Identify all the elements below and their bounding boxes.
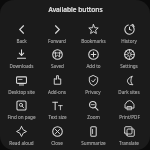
- button[interactable]: History: [111, 22, 147, 45]
- button[interactable]: Forward: [39, 22, 75, 45]
- staticText: Text size: [48, 114, 67, 120]
- staticText: Bookmarks: [81, 38, 106, 44]
- staticText: Available buttons: [48, 5, 103, 14]
- button[interactable]: Settings: [111, 47, 147, 70]
- button[interactable]: Desktop site: [3, 73, 39, 96]
- staticText: Find on page: [7, 114, 36, 120]
- staticText: Zoom: [87, 114, 100, 120]
- button[interactable]: Saved: [39, 47, 75, 70]
- staticText: Privacy: [85, 89, 101, 95]
- staticText: Read aloud: [9, 140, 34, 146]
- button[interactable]: Zoom: [75, 98, 111, 121]
- button[interactable]: Find on page: [3, 98, 39, 121]
- button[interactable]: Privacy: [75, 73, 111, 96]
- button[interactable]: Close: [39, 124, 75, 147]
- button[interactable]: Summarize: [75, 124, 111, 147]
- staticText: Back: [16, 38, 27, 44]
- button[interactable]: Downloads: [3, 47, 39, 70]
- staticText: Downloads: [9, 63, 34, 69]
- button[interactable]: Read aloud: [3, 124, 39, 147]
- staticText: Print/PDF: [119, 114, 140, 120]
- staticText: History: [121, 38, 137, 44]
- button[interactable]: Dark sites: [111, 73, 147, 96]
- staticText: Add to: [86, 63, 101, 69]
- staticText: Forward: [48, 38, 66, 44]
- button[interactable]: Bookmarks: [75, 22, 111, 45]
- staticText: Close: [51, 140, 63, 146]
- staticText: Translate: [119, 140, 139, 146]
- staticText: Summarize: [81, 140, 106, 146]
- staticText: Add-ons: [48, 89, 66, 95]
- button[interactable]: Translate: [111, 124, 147, 147]
- button[interactable]: Text size: [39, 98, 75, 121]
- button[interactable]: Back: [3, 22, 39, 45]
- button[interactable]: Print/PDF: [111, 98, 147, 121]
- staticText: Settings: [120, 63, 138, 69]
- button[interactable]: Add-ons: [39, 73, 75, 96]
- staticText: Desktop site: [8, 89, 35, 95]
- staticText: Saved: [51, 63, 64, 69]
- button[interactable]: Add to: [75, 47, 111, 70]
- staticText: Dark sites: [118, 89, 140, 95]
